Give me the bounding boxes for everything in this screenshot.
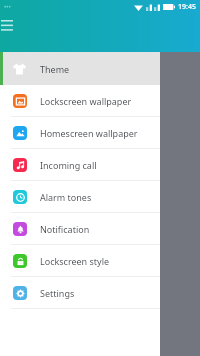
staticText: Theme bbox=[40, 63, 70, 75]
staticText: Alarm tones bbox=[40, 191, 92, 203]
button[interactable]: Incoming call bbox=[0, 149, 160, 180]
staticText: Notification bbox=[40, 223, 90, 235]
staticText: Lockscreen wallpaper bbox=[40, 95, 132, 107]
staticText: ••• bbox=[4, 3, 11, 11]
staticText: Settings bbox=[40, 287, 75, 299]
button[interactable]: Theme bbox=[0, 52, 160, 85]
button[interactable]: Open navigation menu bbox=[0, 19, 16, 33]
staticText: Lockscreen style bbox=[40, 255, 110, 267]
staticText: 19:45 bbox=[178, 2, 196, 12]
button[interactable]: Lockscreen style bbox=[0, 245, 160, 276]
button[interactable]: Settings bbox=[0, 277, 160, 308]
staticText: Homescreen wallpaper bbox=[40, 127, 138, 139]
button[interactable]: Homescreen wallpaper bbox=[0, 117, 160, 148]
button[interactable]: Alarm tones bbox=[0, 181, 160, 212]
staticText: Incoming call bbox=[40, 159, 97, 171]
button[interactable]: Lockscreen wallpaper bbox=[0, 85, 160, 116]
button[interactable]: Notification bbox=[0, 213, 160, 244]
